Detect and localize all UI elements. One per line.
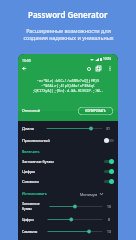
staticText: 100% [103, 57, 112, 61]
button[interactable] [104, 169, 114, 174]
staticText: Заглавные буквы [22, 159, 54, 164]
staticText: Отличный [22, 108, 40, 113]
button[interactable] [104, 159, 114, 164]
staticText: Password Generator [28, 9, 108, 20]
staticText: КОПИРОВАТЬ [85, 109, 106, 113]
staticText: 31 [106, 126, 110, 131]
button[interactable] [104, 179, 114, 184]
staticText: Использовать [22, 191, 47, 196]
button[interactable] [104, 138, 114, 143]
staticText: Цифры [22, 217, 34, 222]
button[interactable]: Произвольный [22, 136, 114, 145]
button[interactable]: Отличный [22, 108, 40, 113]
button[interactable]: Copy [94, 64, 103, 73]
button[interactable]: Символы [22, 177, 114, 186]
button[interactable]: Заглавные буквы [22, 157, 114, 166]
staticText: Минимум [80, 192, 98, 197]
button[interactable]: Цифры [22, 167, 114, 176]
staticText: Заглавные буквы [22, 201, 40, 211]
button[interactable]: Regenerate [84, 64, 93, 73]
staticText: Символы [22, 229, 38, 234]
staticText: Символы [22, 179, 40, 184]
button[interactable]: Минимум [80, 190, 103, 198]
staticText: 10:00 [22, 58, 31, 63]
button[interactable]: КОПИРОВАТЬ [78, 107, 113, 115]
staticText: 8 [108, 217, 110, 222]
staticText: 10 [107, 204, 111, 209]
staticText: ~e=*&Lz|:b5C+!/uARNv7oQ]jfM}S ~*&6&Lz{;4… [32, 78, 104, 93]
staticText: Расширенные возможности для создания над… [23, 27, 114, 42]
staticText: Цифры [22, 169, 36, 174]
staticText: Произвольный [22, 138, 50, 143]
button[interactable]: More options [105, 64, 114, 73]
staticText: Длина [22, 126, 34, 131]
button[interactable]: Back [20, 64, 29, 73]
staticText: Включить [22, 149, 40, 154]
staticText: 13 [107, 229, 111, 234]
